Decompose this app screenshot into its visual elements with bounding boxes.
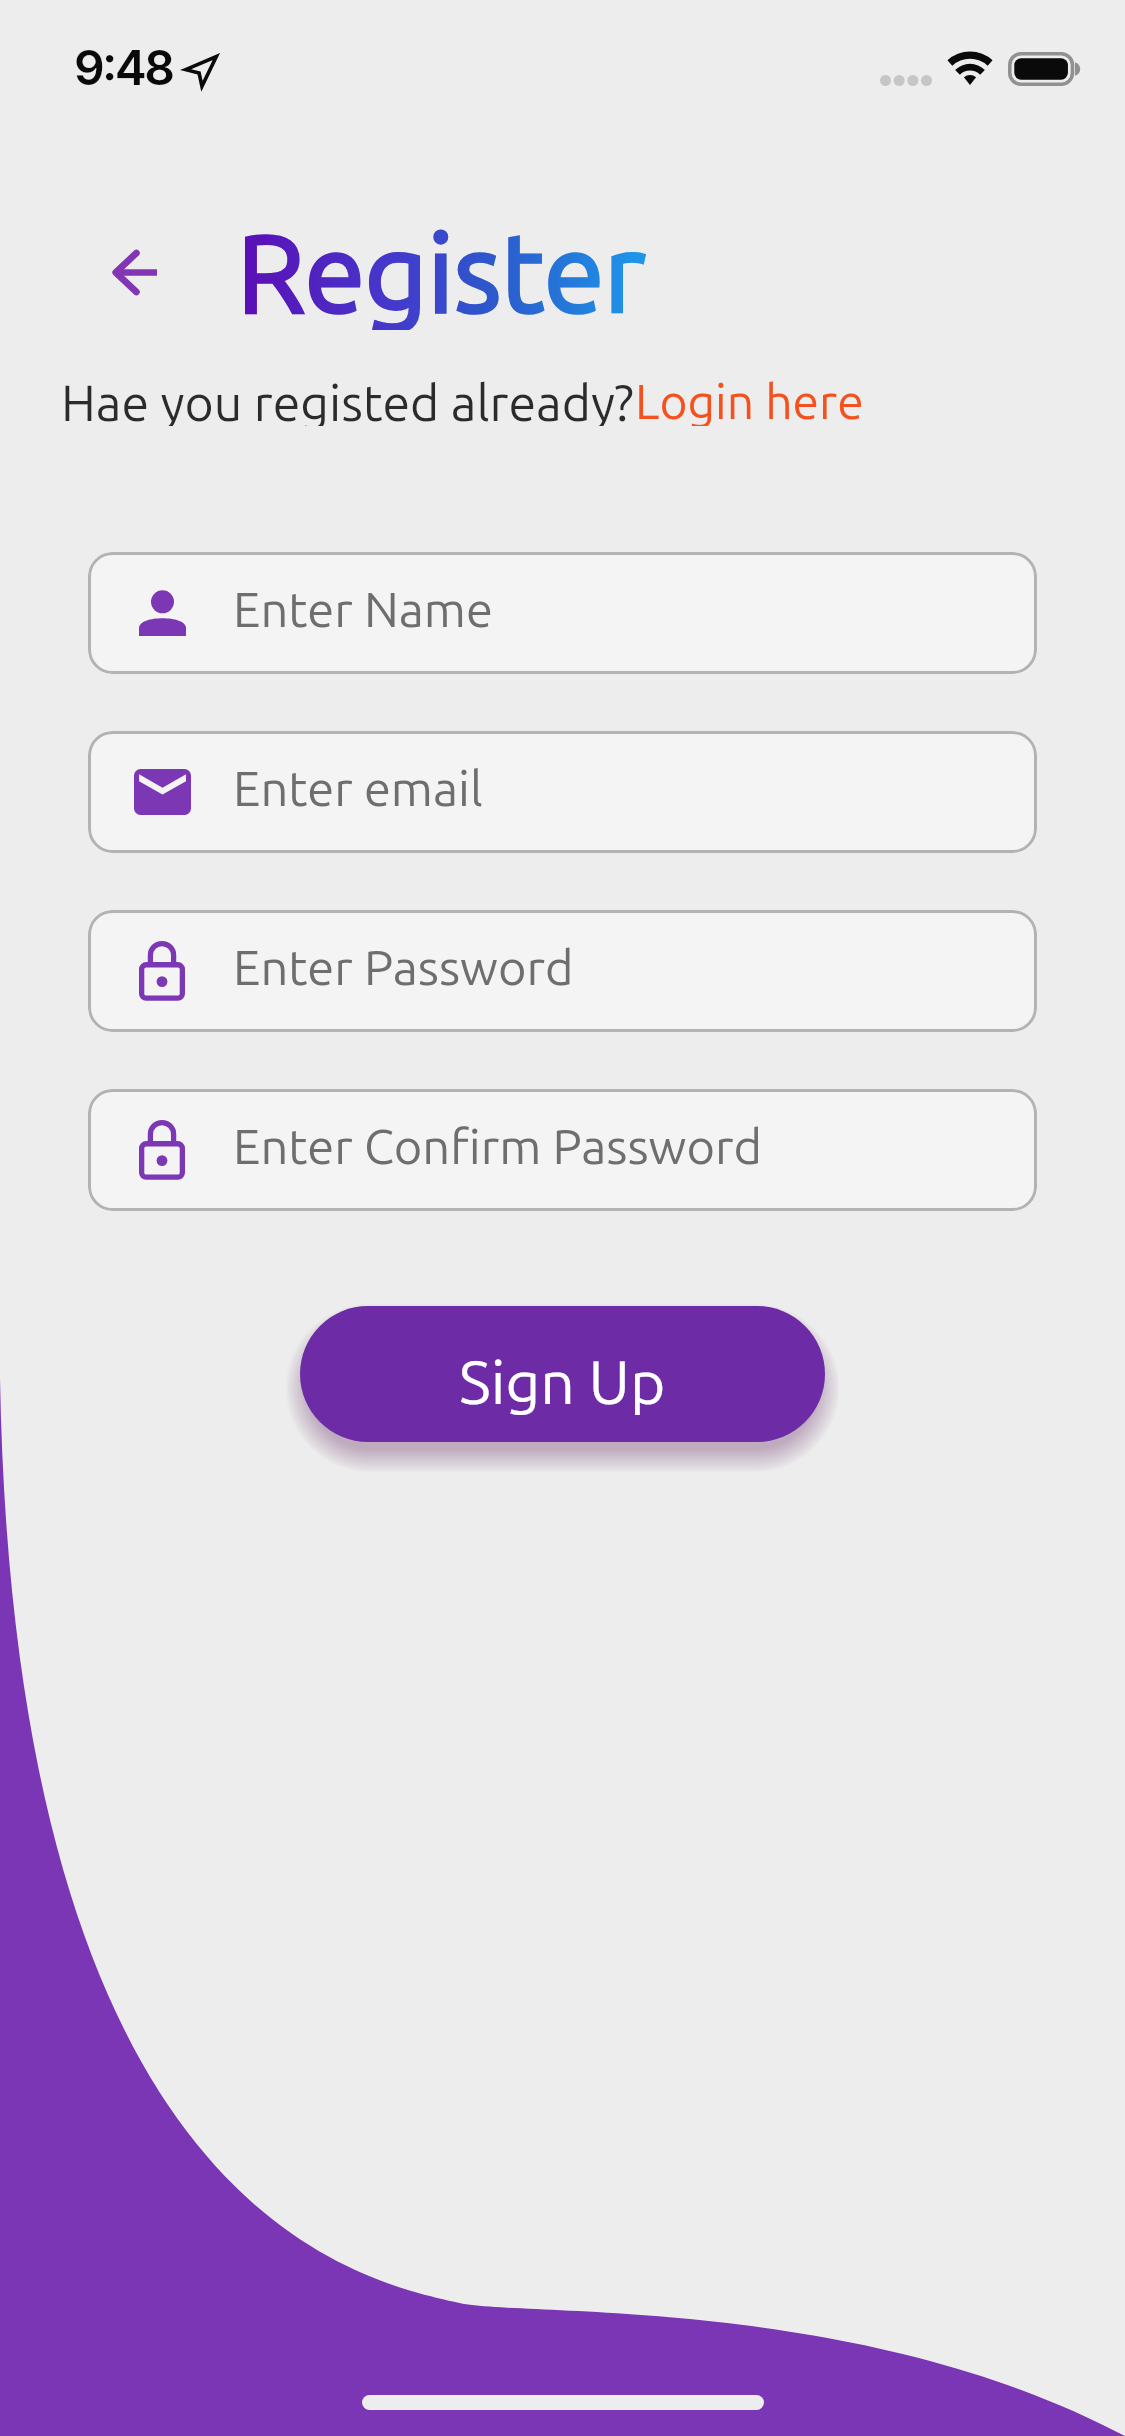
button[interactable]: Sign Up <box>300 1306 825 1442</box>
button[interactable]: Back <box>101 238 169 306</box>
button[interactable]: Enter Name <box>88 552 1037 674</box>
button[interactable]: Enter email <box>88 731 1037 853</box>
button[interactable]: Enter Confirm Password <box>88 1089 1037 1211</box>
staticText: Sign Up <box>459 1348 666 1416</box>
staticText: Enter Password <box>233 940 574 995</box>
staticText: Register <box>237 210 646 330</box>
staticText: Hae you registed already? <box>61 374 634 426</box>
staticText: Login here <box>635 374 864 426</box>
staticText: Enter Confirm Password <box>233 1119 762 1174</box>
button[interactable]: Enter Password <box>88 910 1037 1032</box>
staticText: Enter Name <box>233 582 493 637</box>
button[interactable]: Login here <box>634 374 864 426</box>
staticText: 9:48 <box>74 38 173 96</box>
staticText: Enter email <box>233 761 483 816</box>
